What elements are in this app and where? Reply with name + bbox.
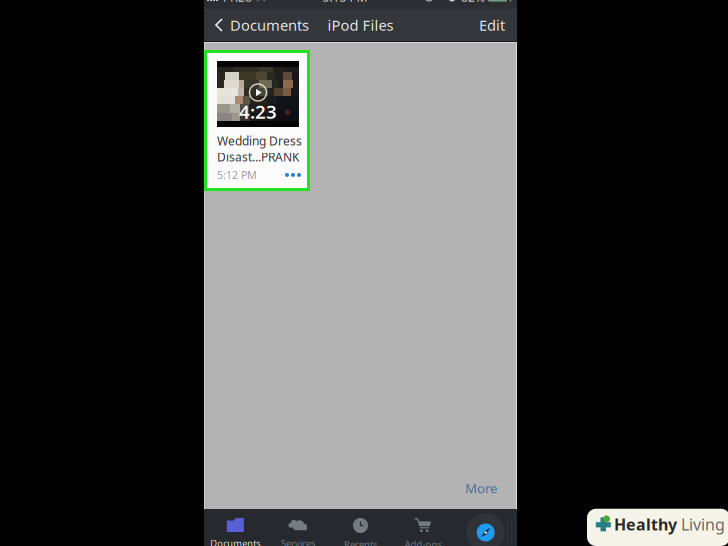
staticText: Living: [681, 514, 725, 535]
staticText: More: [465, 479, 498, 497]
staticText: 5:13 PM: [322, 0, 367, 5]
staticText: Services: [281, 537, 315, 546]
button[interactable]: More: [457, 474, 506, 502]
staticText: Disast...PRANK: [217, 149, 299, 165]
staticText: Healthy: [614, 514, 677, 535]
button[interactable]: Documents: [204, 9, 315, 43]
button[interactable]: Browser: [454, 509, 517, 546]
button[interactable]: Recents: [329, 509, 392, 546]
button[interactable]: Services: [267, 509, 329, 546]
staticText: Recents: [344, 538, 377, 546]
staticText: 5:12 PM: [217, 168, 257, 182]
button[interactable]: Documents: [204, 509, 267, 546]
staticText: 11:28: [221, 0, 252, 5]
staticText: iPod Files: [327, 15, 393, 35]
staticText: Edit: [479, 15, 505, 35]
button[interactable]: Edit: [469, 9, 517, 43]
staticText: Wedding Dress: [217, 133, 302, 149]
staticText: Documents: [210, 537, 260, 546]
staticText: Add-ons: [405, 538, 442, 546]
staticText: Documents: [230, 15, 309, 35]
staticText: 4:23: [239, 99, 277, 124]
staticText: 82%: [461, 0, 485, 5]
button[interactable]: Add-ons: [392, 509, 454, 546]
button[interactable]: 4:23: [207, 53, 307, 188]
